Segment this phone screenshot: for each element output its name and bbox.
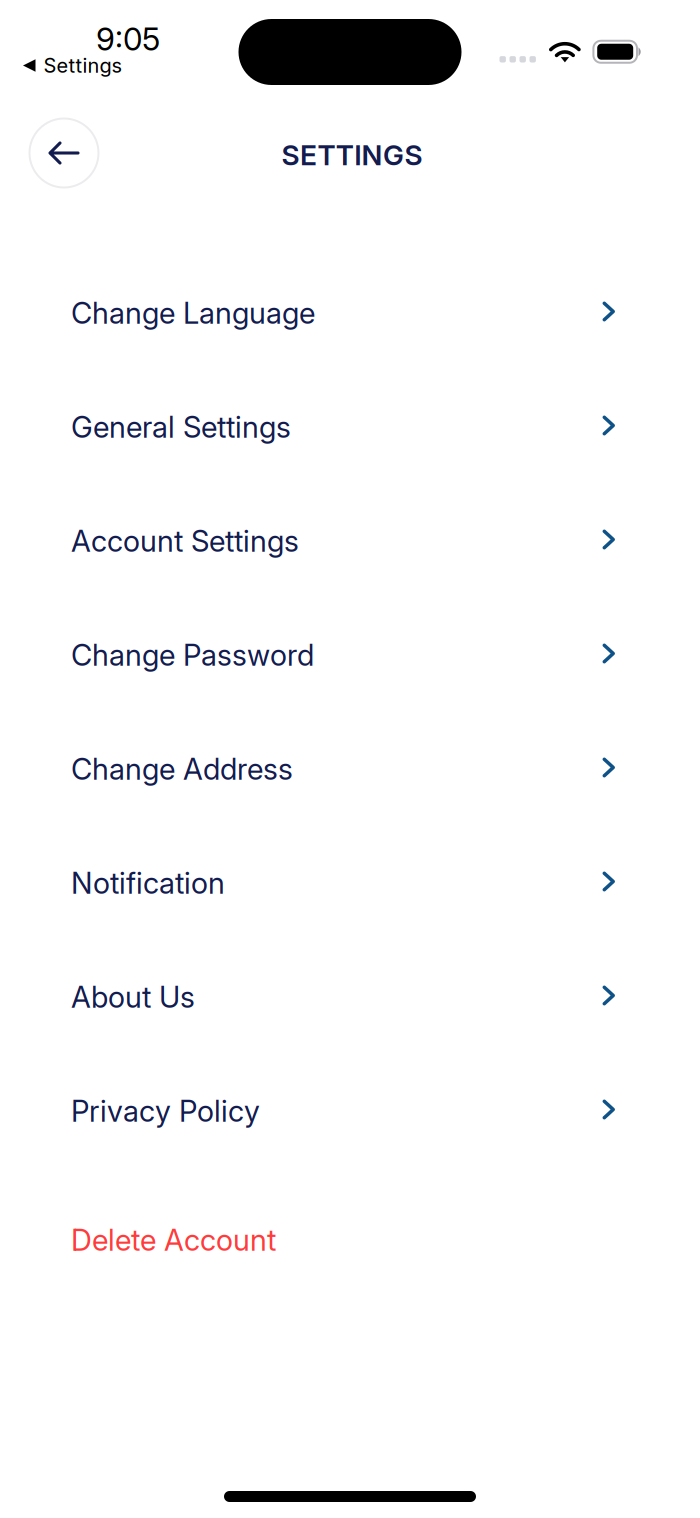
staticText: Notification bbox=[71, 865, 225, 901]
staticText: SETTINGS bbox=[282, 138, 422, 172]
button[interactable]: Change Language bbox=[0, 256, 700, 370]
button[interactable]: Account Settings bbox=[0, 484, 700, 598]
button[interactable]: Back bbox=[29, 118, 99, 188]
staticText: Privacy Policy bbox=[71, 1093, 260, 1129]
button[interactable]: Change Password bbox=[0, 598, 700, 712]
button[interactable]: Delete Account bbox=[0, 1168, 700, 1297]
button[interactable]: Privacy Policy bbox=[0, 1054, 700, 1168]
button[interactable]: Notification bbox=[0, 826, 700, 940]
staticText: 9:05 bbox=[96, 20, 160, 58]
button[interactable]: Change Address bbox=[0, 712, 700, 826]
staticText: Change Password bbox=[71, 637, 314, 673]
staticText: Delete Account bbox=[71, 1222, 276, 1258]
staticText: General Settings bbox=[71, 409, 291, 445]
staticText: Settings bbox=[43, 53, 122, 78]
button[interactable]: About Us bbox=[0, 940, 700, 1054]
staticText: Change Language bbox=[71, 295, 315, 331]
staticText: About Us bbox=[71, 979, 195, 1015]
staticText: Change Address bbox=[71, 751, 293, 787]
button[interactable]: General Settings bbox=[0, 370, 700, 484]
staticText: Account Settings bbox=[71, 523, 299, 559]
